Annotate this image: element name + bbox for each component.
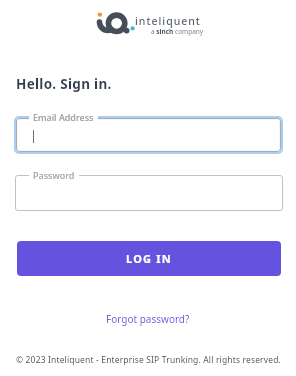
staticText: inteliquent [135,14,201,28]
staticText: LOG IN [126,251,172,266]
staticText: © 2023 Inteliquent - Enterprise SIP Trun… [16,354,281,366]
staticText: Hello. Sign in. [16,75,112,93]
button[interactable] [14,116,283,154]
staticText: Email Address [33,111,94,123]
staticText: Password [33,169,75,181]
button[interactable]: LOG IN [17,241,281,276]
staticText: a sinch company [151,27,204,36]
button[interactable]: Forgot password? [102,308,194,330]
button[interactable] [15,175,283,211]
